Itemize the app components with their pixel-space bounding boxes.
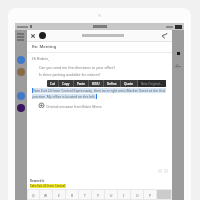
staticText: O bbox=[136, 193, 139, 197]
staticText: Paste bbox=[77, 82, 85, 86]
button[interactable]: Send bbox=[161, 32, 168, 39]
staticText: Cut bbox=[50, 82, 55, 86]
staticText: Is there parking available for visitors? bbox=[39, 72, 101, 77]
button[interactable]: Robin Myers bbox=[17, 56, 25, 64]
staticText: I bbox=[123, 193, 125, 197]
staticText: Hi Robin, bbox=[32, 56, 49, 61]
button[interactable]: Define bbox=[104, 80, 120, 87]
button[interactable]: Participant bbox=[17, 104, 25, 112]
staticText: junction. My office is located on the le… bbox=[32, 94, 96, 99]
button[interactable]: Quote bbox=[121, 80, 137, 87]
button[interactable]: Copy bbox=[59, 80, 73, 87]
staticText: New Original... bbox=[141, 82, 163, 86]
staticText: Reword it bbox=[30, 179, 45, 183]
button[interactable]: B/I/U bbox=[89, 80, 103, 87]
staticText: U bbox=[110, 193, 113, 197]
button[interactable]: R bbox=[66, 190, 78, 199]
button[interactable]: Participant bbox=[17, 92, 25, 100]
button[interactable]: New Original... bbox=[138, 80, 166, 87]
staticText: Q bbox=[32, 193, 35, 197]
button[interactable]: Mailboxes bbox=[17, 33, 24, 41]
staticText: T bbox=[84, 193, 86, 197]
staticText: W bbox=[44, 193, 48, 197]
staticText: Quote bbox=[124, 82, 134, 86]
staticText: E bbox=[58, 193, 60, 197]
staticText: Original message from Robin Myers bbox=[46, 104, 102, 108]
button[interactable]: Reply bbox=[175, 63, 181, 69]
button[interactable]: O bbox=[131, 190, 143, 199]
button[interactable]: W bbox=[40, 190, 52, 199]
staticText: Re: Meeting bbox=[32, 44, 57, 50]
staticText: Y bbox=[97, 193, 99, 197]
button[interactable]: Cut bbox=[47, 80, 58, 87]
staticText: Take Exit 24 from Central Expressway, th… bbox=[33, 88, 166, 93]
button[interactable]: Sender bbox=[17, 68, 25, 76]
button[interactable]: Paste bbox=[74, 80, 88, 87]
button[interactable]: Close bbox=[30, 33, 36, 39]
button[interactable]: T bbox=[79, 190, 91, 199]
staticText: B/I/U bbox=[92, 82, 100, 86]
button[interactable]: E bbox=[53, 190, 65, 199]
staticText: Copy bbox=[62, 82, 70, 86]
button[interactable]: U bbox=[105, 190, 117, 199]
staticText: Define bbox=[107, 82, 117, 86]
staticText: Can you send me the directions to your o… bbox=[39, 65, 115, 70]
button[interactable]: P bbox=[144, 190, 156, 199]
staticText: P bbox=[149, 193, 151, 197]
button[interactable]: Y bbox=[92, 190, 104, 199]
button[interactable]: I bbox=[118, 190, 130, 199]
staticText: R bbox=[71, 193, 74, 197]
button[interactable]: Sender avatar bbox=[39, 32, 46, 39]
button[interactable]: Q bbox=[28, 190, 39, 199]
staticText: Take Exit 24 from Central bbox=[30, 184, 66, 188]
